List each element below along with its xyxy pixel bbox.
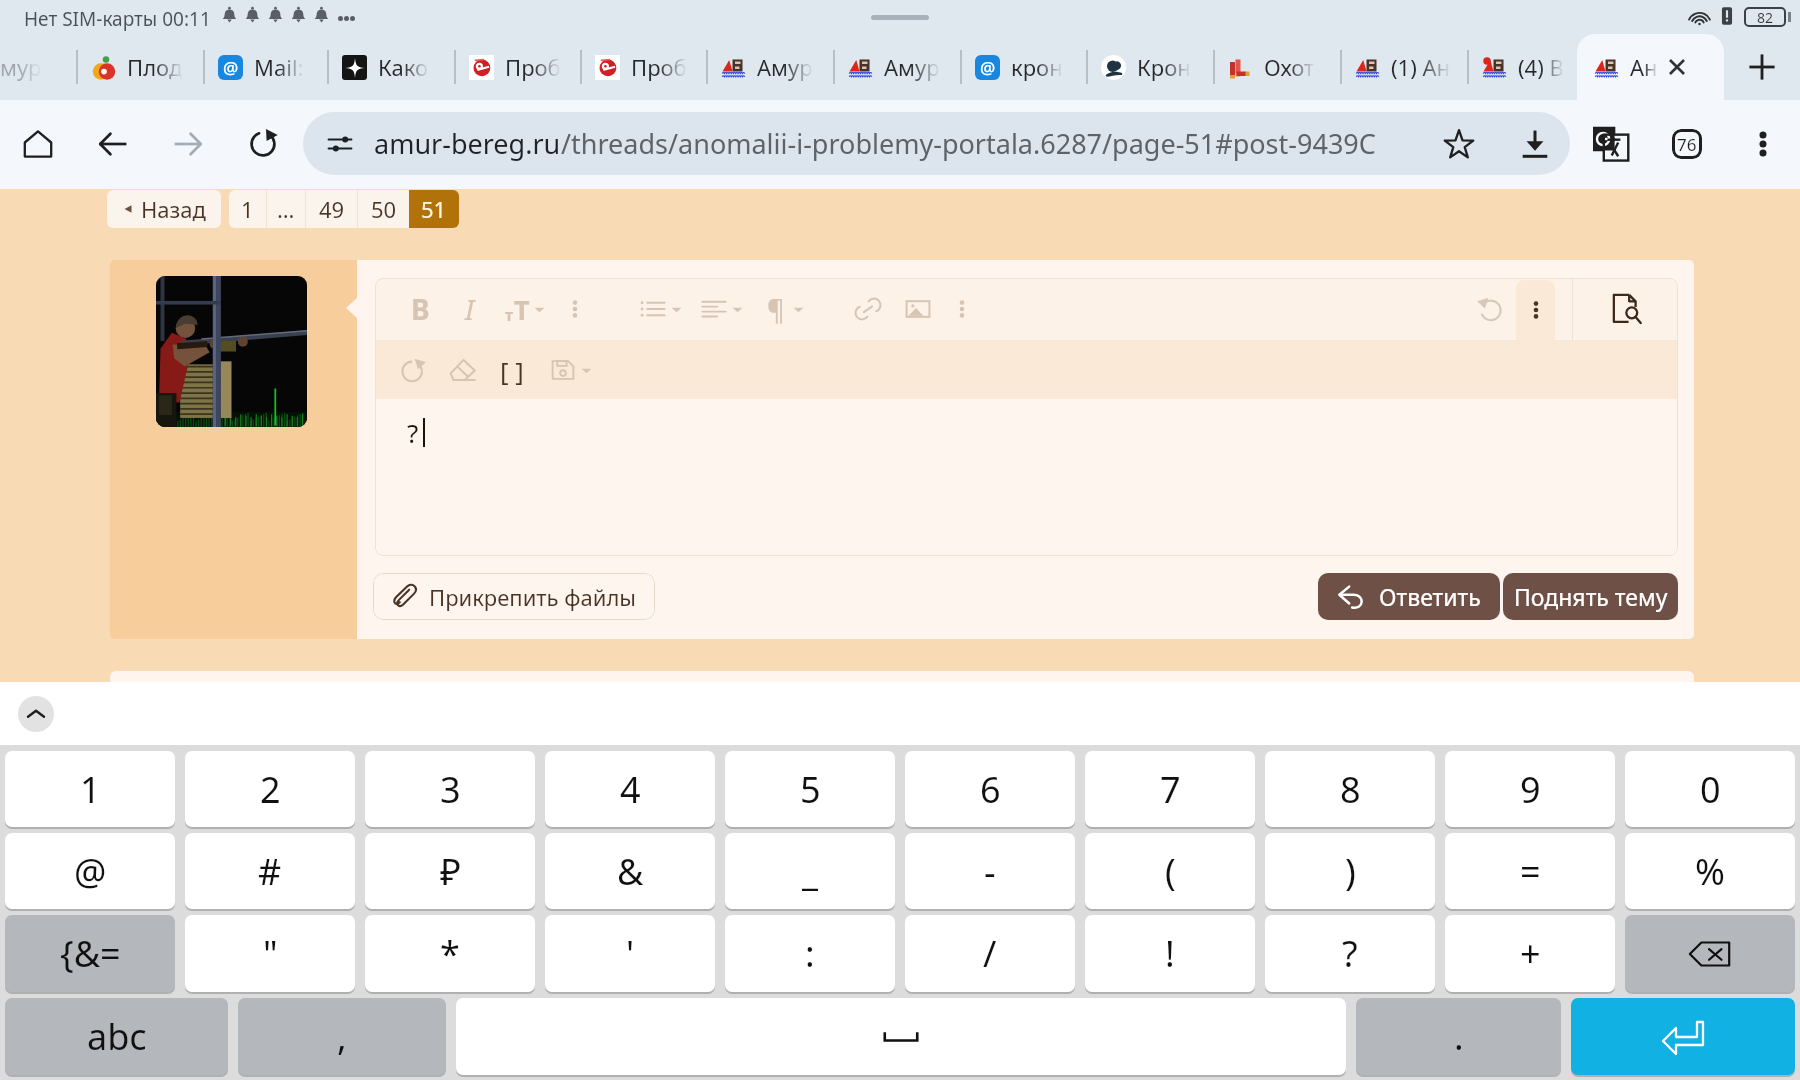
button[interactable]: Ан bbox=[1577, 34, 1724, 100]
button[interactable]: Editor tool bbox=[442, 341, 484, 399]
button[interactable]: , bbox=[238, 998, 446, 1075]
button[interactable]: Проб bbox=[580, 34, 706, 100]
staticText: (4) В bbox=[1518, 52, 1564, 82]
button[interactable]: 0 bbox=[1625, 751, 1795, 827]
button[interactable]: Editor tool bbox=[655, 278, 697, 340]
button[interactable]: _ bbox=[725, 833, 895, 909]
button[interactable]: 7 bbox=[1085, 751, 1255, 827]
button[interactable]: 4 bbox=[545, 751, 715, 827]
button[interactable]: Editor tool bbox=[399, 278, 441, 340]
button[interactable]: 6 bbox=[905, 751, 1075, 827]
button[interactable]: Editor tool bbox=[777, 278, 819, 340]
button[interactable]: Крон bbox=[1086, 34, 1213, 100]
button[interactable]: … bbox=[267, 190, 305, 228]
button[interactable]: Close tab bbox=[1662, 52, 1692, 82]
button[interactable]: & bbox=[545, 833, 715, 909]
button[interactable]: / bbox=[905, 915, 1075, 992]
staticText: + bbox=[1520, 929, 1541, 978]
button[interactable]: 9 bbox=[1445, 751, 1615, 827]
button[interactable]: Hide keyboard bbox=[18, 696, 54, 732]
button[interactable]: ! bbox=[1085, 915, 1255, 992]
button[interactable]: 3 bbox=[365, 751, 535, 827]
button[interactable]: Плод bbox=[76, 34, 203, 100]
button[interactable]: Editor tool bbox=[1469, 278, 1511, 340]
button[interactable]: Editor tool bbox=[693, 278, 735, 340]
button[interactable]: Амур bbox=[833, 34, 960, 100]
button[interactable]: @ bbox=[203, 34, 327, 100]
staticText: 49 bbox=[319, 194, 345, 224]
button[interactable]: = bbox=[1445, 833, 1615, 909]
staticText: * bbox=[440, 929, 460, 978]
button[interactable]: Editor tool bbox=[554, 278, 596, 340]
button[interactable]: Space bbox=[456, 998, 1346, 1075]
button[interactable]: Preview bbox=[1573, 278, 1678, 340]
button[interactable]: Backspace bbox=[1625, 915, 1795, 992]
button[interactable]: ) bbox=[1265, 833, 1435, 909]
button[interactable]: Editor tool bbox=[542, 341, 584, 399]
button[interactable]: Ответить bbox=[1318, 573, 1500, 620]
button[interactable]: 5 bbox=[725, 751, 895, 827]
button[interactable]: Editor tool bbox=[716, 278, 758, 340]
button[interactable]: 8 bbox=[1265, 751, 1435, 827]
button[interactable]: % bbox=[1625, 833, 1795, 909]
button[interactable]: мур bbox=[0, 34, 76, 100]
button[interactable]: Прикрепить файлы bbox=[373, 573, 655, 620]
button[interactable]: Како bbox=[327, 34, 454, 100]
button[interactable]: (4) В bbox=[1467, 34, 1577, 100]
button[interactable]: abc bbox=[5, 998, 228, 1075]
button[interactable]: - bbox=[905, 833, 1075, 909]
button[interactable]: Проб bbox=[454, 34, 580, 100]
button[interactable]: @ bbox=[5, 833, 175, 909]
button[interactable]: # bbox=[185, 833, 355, 909]
button[interactable]: Overflow bbox=[1516, 280, 1555, 340]
button[interactable]: @ bbox=[960, 34, 1086, 100]
button[interactable]: {&= bbox=[5, 915, 175, 992]
button[interactable]: Амур bbox=[706, 34, 833, 100]
button[interactable]: (1) Ан bbox=[1340, 34, 1467, 100]
button[interactable]: Reload bbox=[239, 120, 287, 168]
button[interactable]: Editor tool bbox=[518, 278, 560, 340]
button[interactable]: Editor tool bbox=[847, 278, 889, 340]
button[interactable]: Editor tool bbox=[632, 278, 674, 340]
button[interactable]: Поднять тему bbox=[1503, 573, 1678, 620]
button[interactable]: More options bbox=[1739, 120, 1787, 168]
button[interactable]: Enter bbox=[1571, 998, 1795, 1075]
button[interactable]: 1 bbox=[229, 190, 266, 228]
button[interactable]: amur-bereg.ru bbox=[303, 112, 1570, 175]
button[interactable]: " bbox=[185, 915, 355, 992]
button[interactable]: * bbox=[365, 915, 535, 992]
button[interactable]: Editor tool bbox=[392, 341, 434, 399]
staticText: 76 bbox=[1677, 133, 1697, 156]
button[interactable]: + bbox=[1445, 915, 1615, 992]
button[interactable]: Editor tool bbox=[941, 278, 983, 340]
button[interactable]: ( bbox=[1085, 833, 1255, 909]
button[interactable]: Editor tool bbox=[897, 278, 939, 340]
button[interactable]: Forward bbox=[164, 120, 212, 168]
button[interactable]: Bookmark bbox=[1435, 120, 1483, 168]
button[interactable]: : bbox=[725, 915, 895, 992]
button[interactable]: Download bbox=[1511, 120, 1559, 168]
button[interactable]: 2 bbox=[185, 751, 355, 827]
button[interactable]: New tab bbox=[1724, 34, 1800, 100]
button[interactable]: 50 bbox=[358, 190, 409, 228]
button[interactable]: 51 bbox=[409, 190, 459, 228]
button[interactable]: Translate bbox=[1587, 120, 1635, 168]
button[interactable]: ' bbox=[545, 915, 715, 992]
button[interactable]: Editor tool bbox=[449, 278, 491, 340]
button[interactable]: Editor tool bbox=[496, 278, 538, 340]
button[interactable]: 49 bbox=[306, 190, 357, 228]
button[interactable]: Назад bbox=[107, 190, 221, 228]
button[interactable]: Editor tool bbox=[565, 341, 607, 399]
button[interactable]: ₽ bbox=[365, 833, 535, 909]
button[interactable]: Back bbox=[89, 120, 137, 168]
button[interactable]: Editor tool bbox=[755, 278, 797, 340]
button[interactable]: Tabs bbox=[1663, 120, 1711, 168]
button[interactable]: Home bbox=[14, 120, 62, 168]
staticText: 0 bbox=[1700, 765, 1721, 814]
button[interactable]: ? bbox=[1265, 915, 1435, 992]
staticText: Ответить bbox=[1379, 581, 1481, 612]
button[interactable]: 1 bbox=[5, 751, 175, 827]
button[interactable]: . bbox=[1356, 998, 1561, 1075]
button[interactable]: Охот bbox=[1213, 34, 1340, 100]
button[interactable]: Editor tool bbox=[491, 341, 533, 399]
